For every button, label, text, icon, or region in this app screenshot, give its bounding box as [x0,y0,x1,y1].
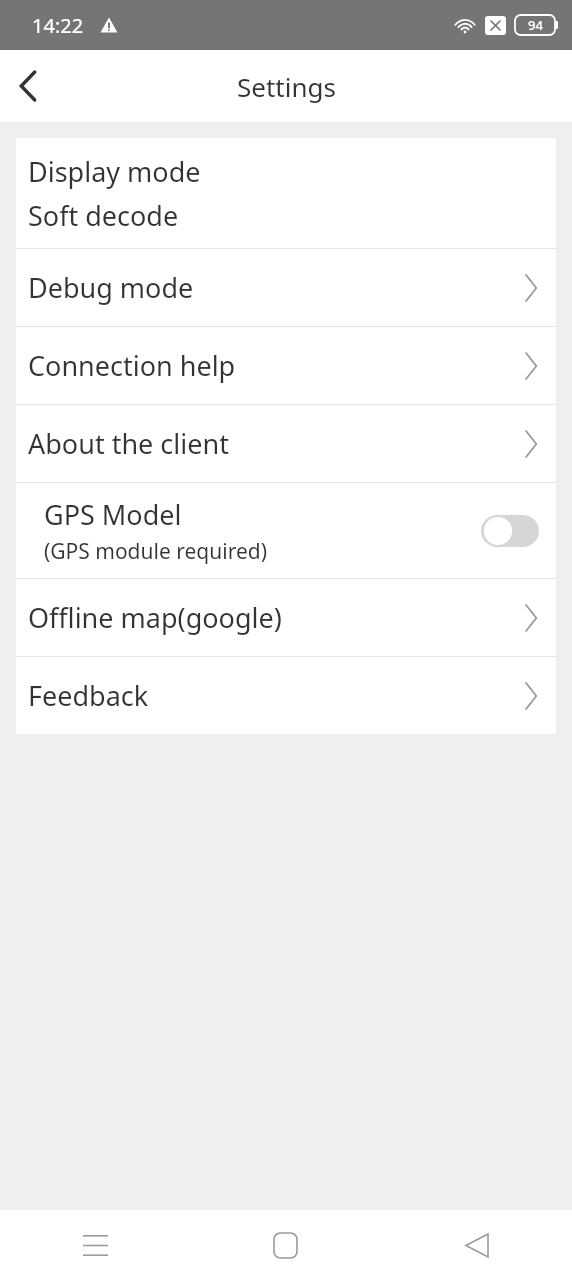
staticText: Connection help [28,347,524,384]
button[interactable]: Back [381,1210,572,1280]
staticText: 94 [528,16,543,34]
button[interactable]: About the client [16,405,556,482]
button[interactable]: GPS Model toggle [481,515,539,547]
staticText: 14:22 [32,12,84,39]
staticText: Feedback [28,677,524,714]
staticText: About the client [28,425,524,462]
staticText: Debug mode [28,269,524,306]
button[interactable]: Debug mode [16,249,556,326]
button[interactable]: Display mode [16,138,556,248]
staticText: (GPS module required) [44,537,267,566]
button[interactable]: Recents [0,1210,190,1280]
staticText: Soft decode [28,197,179,234]
staticText: Settings [237,69,336,104]
button[interactable]: GPS Model [16,483,556,578]
button[interactable]: Back [0,58,56,114]
button[interactable]: Connection help [16,327,556,404]
button[interactable]: Home [190,1210,381,1280]
staticText: GPS Model [44,496,182,533]
button[interactable]: Offline map(google) [16,579,556,656]
staticText: Display mode [28,153,201,190]
staticText: Offline map(google) [28,599,524,636]
button[interactable]: Feedback [16,657,556,734]
